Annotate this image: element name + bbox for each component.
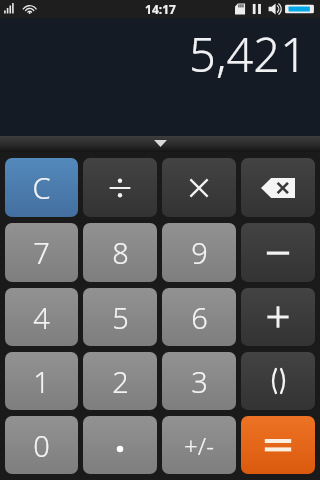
button[interactable]: Multiply [162, 158, 236, 217]
button[interactable]: 8 [83, 223, 157, 282]
staticText: 1 [33, 362, 50, 401]
staticText: 14:17 [145, 1, 176, 17]
button[interactable]: 0 [5, 416, 78, 474]
staticText: 5 [112, 298, 129, 337]
button[interactable]: Minus [241, 223, 315, 282]
button[interactable]: 4 [5, 288, 78, 346]
button[interactable]: 7 [5, 223, 78, 282]
staticText: 7 [33, 233, 50, 272]
button[interactable]: 1 [5, 352, 78, 410]
staticText: 9 [191, 233, 208, 272]
button[interactable]: Expand history [0, 136, 320, 152]
staticText: 3 [191, 362, 208, 401]
staticText: C [32, 168, 51, 207]
button[interactable]: 6 [162, 288, 236, 346]
button[interactable]: Decimal point [83, 416, 157, 474]
staticText: 6 [191, 298, 208, 337]
staticText: 4 [33, 298, 50, 337]
button[interactable]: Parentheses [241, 352, 315, 410]
button[interactable]: 3 [162, 352, 236, 410]
staticText: 2 [112, 362, 129, 401]
staticText: 8 [112, 233, 129, 272]
button[interactable]: Clear [5, 158, 78, 217]
button[interactable]: Divide [83, 158, 157, 217]
button[interactable]: 9 [162, 223, 236, 282]
button[interactable]: 5 [83, 288, 157, 346]
button[interactable]: Backspace [241, 158, 315, 217]
button[interactable]: Equals [241, 416, 315, 474]
button[interactable]: Sign [162, 416, 236, 474]
staticText: 0 [33, 426, 50, 465]
button[interactable]: 2 [83, 352, 157, 410]
staticText: +/- [184, 429, 214, 462]
staticText: 5,421 [189, 22, 307, 86]
button[interactable]: Plus [241, 288, 315, 346]
